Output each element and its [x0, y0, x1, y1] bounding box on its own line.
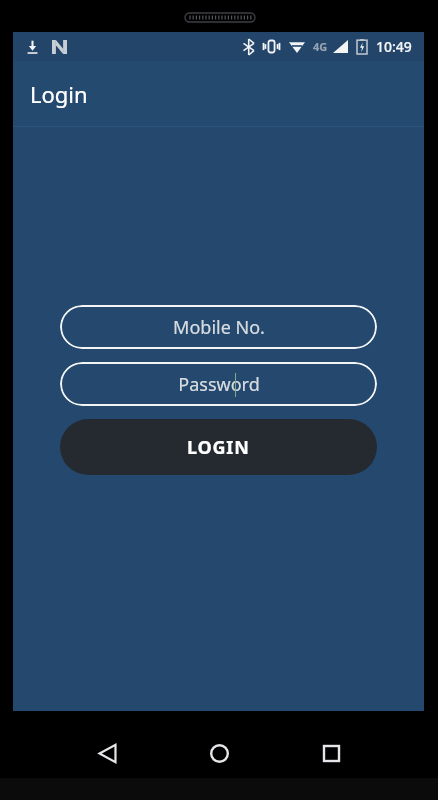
- staticText: LOGIN: [187, 435, 250, 460]
- button[interactable]: Password: [60, 362, 377, 406]
- staticText: Password: [178, 372, 260, 397]
- staticText: Mobile No.: [173, 315, 265, 340]
- staticText: 4G: [313, 39, 328, 54]
- button[interactable]: Recent apps: [303, 725, 359, 781]
- staticText: 10:49: [376, 37, 412, 56]
- button[interactable]: Back: [79, 725, 135, 781]
- staticText: Login: [30, 79, 88, 109]
- button[interactable]: Home: [191, 725, 247, 781]
- button[interactable]: LOGIN: [60, 419, 377, 475]
- button[interactable]: Mobile No.: [60, 305, 377, 349]
